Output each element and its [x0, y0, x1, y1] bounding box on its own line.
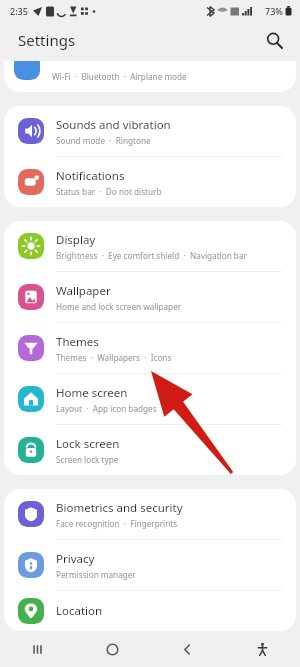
staticText: 2:35: [10, 5, 28, 17]
button[interactable]: Lock screen: [4, 425, 296, 475]
staticText: Biometrics and security: [56, 500, 183, 516]
button[interactable]: Display: [4, 221, 296, 272]
staticText: Themes · Wallpapers · Icons: [56, 352, 172, 363]
button[interactable]: Back: [150, 631, 225, 667]
staticText: Privacy: [56, 551, 95, 567]
button[interactable]: Biometrics and security: [4, 489, 296, 540]
staticText: Permission manager: [56, 569, 136, 580]
staticText: 73%: [265, 5, 283, 17]
button[interactable]: Notifications: [4, 157, 296, 207]
button[interactable]: Home: [75, 631, 150, 667]
button[interactable]: Recents: [0, 631, 75, 667]
staticText: Wallpaper: [56, 283, 111, 299]
staticText: Status bar · Do not disturb: [56, 186, 162, 197]
button[interactable]: Wi-Fi · Bluetooth · Airplane mode: [4, 61, 296, 92]
staticText: Wi-Fi · Bluetooth · Airplane mode: [52, 71, 187, 82]
staticText: Sound mode · Ringtone: [56, 135, 151, 146]
staticText: Lock screen: [56, 436, 120, 452]
staticText: Themes: [56, 334, 99, 350]
staticText: Face recognition · Fingerprints: [56, 518, 178, 529]
staticText: Brightness · Eye comfort shield · Naviga…: [56, 250, 247, 261]
button[interactable]: Sounds and vibration: [4, 106, 296, 157]
button[interactable]: Search: [260, 26, 288, 54]
button[interactable]: Accessibility: [225, 631, 300, 667]
staticText: Notifications: [56, 168, 125, 184]
staticText: Layout · App icon badges: [56, 403, 157, 414]
button[interactable]: Privacy: [4, 540, 296, 591]
staticText: Home screen: [56, 385, 128, 401]
staticText: Sounds and vibration: [56, 117, 171, 133]
button[interactable]: Location: [4, 591, 296, 631]
staticText: Settings: [18, 30, 76, 50]
staticText: Home and lock screen wallpaper: [56, 301, 182, 312]
button[interactable]: Wallpaper: [4, 272, 296, 323]
button[interactable]: Themes: [4, 323, 296, 374]
staticText: Screen lock type: [56, 454, 119, 465]
button[interactable]: Home screen: [4, 374, 296, 425]
staticText: Location: [56, 603, 103, 619]
staticText: Display: [56, 232, 96, 248]
